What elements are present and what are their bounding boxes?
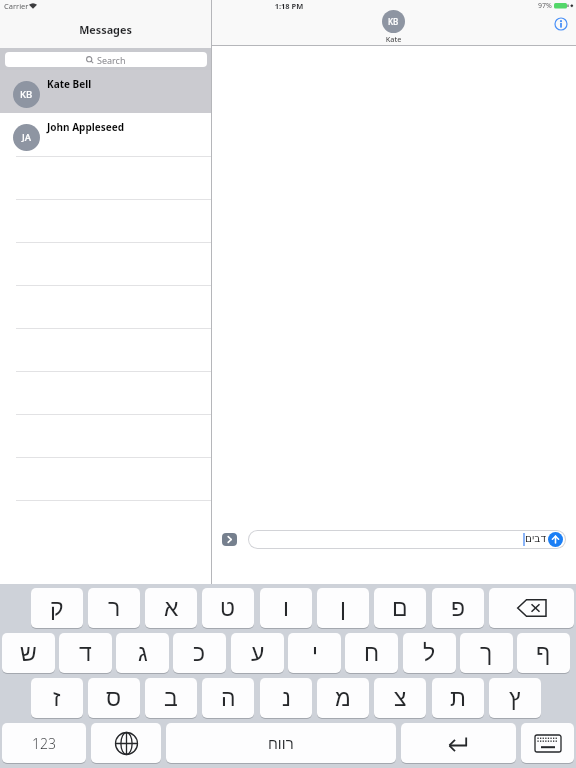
button[interactable]: פ [432,588,484,628]
staticText: ה [221,685,236,711]
button[interactable]: ה [202,678,254,718]
button[interactable]: Search [5,52,207,67]
button[interactable] [0,70,211,113]
button[interactable]: ך [460,633,513,673]
staticText: י [312,640,318,666]
staticText: צ [394,685,407,711]
button[interactable]: נ [260,678,312,718]
button[interactable]: ח [345,633,398,673]
staticText: JA [22,131,31,144]
button[interactable]: מ [317,678,369,718]
button[interactable]: 123 [2,723,86,763]
button[interactable] [0,113,211,156]
staticText: ל [423,640,436,666]
button[interactable] [91,723,161,763]
button[interactable]: ס [88,678,140,718]
staticText: 1:18 PM [259,1,319,11]
button[interactable]: י [288,633,341,673]
staticText: 123 [32,734,56,753]
button[interactable]: ן [317,588,369,628]
button[interactable]: ו [260,588,312,628]
staticText: ן [340,595,346,621]
staticText: ט [220,595,236,621]
button[interactable]: ק [31,588,83,628]
button[interactable] [489,588,574,628]
staticText: פ [451,595,466,621]
staticText: ץ [509,685,521,711]
staticText: Messages [0,22,211,37]
button[interactable] [521,723,574,763]
staticText: נ [282,685,291,711]
staticText: John Appleseed [47,120,124,134]
staticText: ר [108,595,121,621]
staticText: ח [364,640,380,666]
button[interactable]: ג [116,633,169,673]
button[interactable] [548,532,563,547]
staticText: ם [392,595,408,621]
button[interactable]: א [145,588,197,628]
button[interactable]: ף [517,633,570,673]
staticText: דבים [525,532,547,544]
staticText: מ [335,685,351,711]
button[interactable] [222,533,237,546]
button[interactable]: ד [59,633,112,673]
staticText: כ [193,640,206,666]
staticText: ע [251,640,265,666]
button[interactable]: KB [382,10,405,33]
staticText: ס [106,685,122,711]
button[interactable]: ל [403,633,456,673]
staticText: ת [450,685,466,711]
button[interactable] [249,531,565,548]
staticText: ק [50,595,64,621]
staticText: ג [138,640,148,666]
staticText: ו [283,595,289,621]
staticText: א [164,595,179,621]
button[interactable]: רווח [166,723,396,763]
staticText: Search [97,54,126,66]
button[interactable]: ט [202,588,254,628]
button[interactable]: ב [145,678,197,718]
button[interactable] [401,723,516,763]
staticText: רווח [268,735,294,752]
staticText: KB [388,16,399,27]
button[interactable]: כ [173,633,226,673]
staticText: Carrier [4,1,29,11]
staticText: ז [53,685,61,711]
staticText: ך [480,640,493,666]
staticText: KB [20,88,33,101]
button[interactable]: ת [432,678,484,718]
staticText: ש [20,640,37,666]
button[interactable]: צ [374,678,426,718]
staticText: ד [79,640,92,666]
button[interactable]: ש [2,633,55,673]
staticText: ב [164,685,178,711]
staticText: Kate Bell [47,77,92,91]
button[interactable] [554,17,568,31]
staticText: ף [536,640,551,666]
staticText: Kate [363,34,424,44]
staticText: 97% [538,1,552,11]
button[interactable]: ר [88,588,140,628]
button[interactable]: ם [374,588,426,628]
button[interactable]: ץ [489,678,541,718]
button[interactable]: ז [31,678,83,718]
button[interactable]: ע [231,633,284,673]
